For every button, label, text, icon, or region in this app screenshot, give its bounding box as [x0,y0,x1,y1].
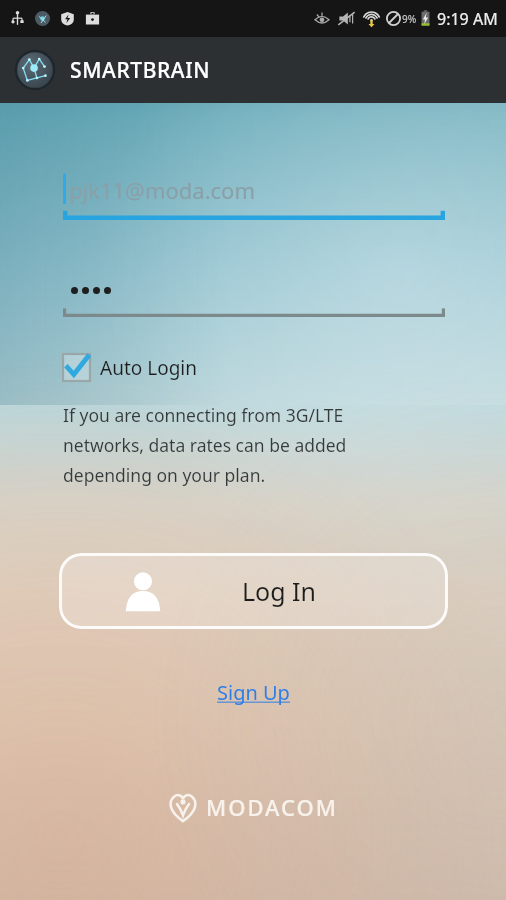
staticText: depending on your plan. [63,463,266,487]
staticText: Auto Login [100,355,197,381]
button[interactable]: Log In [59,553,448,629]
button[interactable] [63,263,445,317]
staticText: SMARTBRAIN [70,56,211,85]
staticText: 9% [402,12,417,26]
staticText: MODACOM [206,792,339,822]
button[interactable]: pjk11@moda.com [63,166,445,220]
button[interactable]: Auto Login [63,354,197,381]
staticText: If you are connecting from 3G/LTE [63,403,344,427]
staticText: Sign Up [217,679,290,706]
staticText: networks, data rates can be added [63,433,347,457]
staticText: 9:19 AM [437,8,498,30]
button[interactable]: Sign Up [209,675,298,710]
staticText: Log In [242,574,317,608]
staticText: pjk11@moda.com [69,175,255,205]
